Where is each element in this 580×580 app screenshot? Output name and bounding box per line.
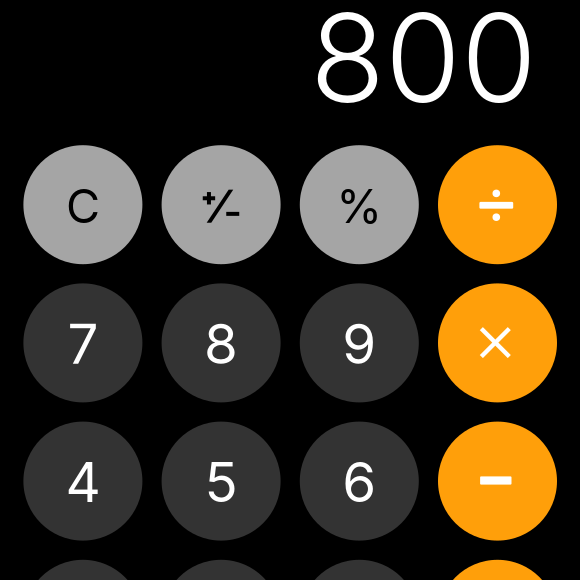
button[interactable]: Add — [438, 560, 557, 580]
button[interactable]: 7 — [23, 283, 142, 402]
button[interactable]: 3 — [300, 560, 419, 580]
staticText: 7 — [67, 311, 98, 377]
button[interactable]: Plus Minus — [162, 145, 281, 264]
button[interactable]: 6 — [300, 422, 419, 541]
button[interactable]: 8 — [162, 283, 281, 402]
button[interactable]: 1 — [23, 560, 142, 580]
button[interactable]: C — [23, 145, 142, 264]
staticText: C — [66, 178, 100, 234]
button[interactable]: Multiply — [438, 283, 557, 402]
button[interactable]: % — [300, 145, 419, 264]
staticText: 6 — [342, 449, 376, 515]
button[interactable]: 4 — [23, 422, 142, 541]
button[interactable]: 2 — [162, 560, 281, 580]
staticText: 9 — [342, 311, 376, 377]
button[interactable]: 5 — [162, 422, 281, 541]
button[interactable]: 9 — [300, 283, 419, 402]
button[interactable]: Subtract — [438, 422, 557, 541]
button[interactable]: Divide — [438, 145, 557, 264]
staticText: 4 — [65, 449, 100, 515]
staticText: 8 — [204, 311, 238, 377]
staticText: % — [336, 178, 382, 234]
staticText: 800 — [310, 0, 537, 132]
staticText: 5 — [205, 449, 238, 515]
